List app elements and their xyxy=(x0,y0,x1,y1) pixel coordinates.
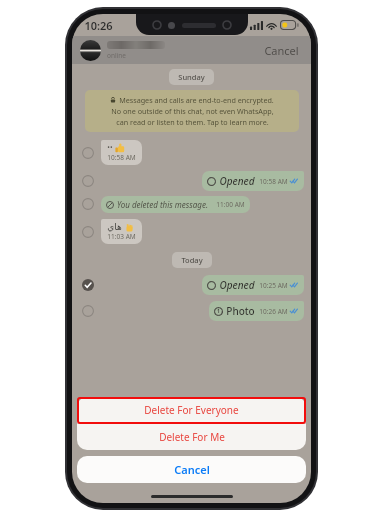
staticText: Cancel xyxy=(174,462,210,477)
button[interactable]: Today xyxy=(172,252,212,268)
staticText: هاي xyxy=(107,222,122,232)
staticText: Cancel xyxy=(264,43,299,58)
button[interactable]: هاي xyxy=(101,219,142,244)
staticText: Opened xyxy=(219,174,255,188)
button[interactable]: Messages and calls are end-to-end encryp… xyxy=(85,90,299,132)
staticText: Today xyxy=(181,255,203,265)
button[interactable]: Select message xyxy=(79,144,97,162)
staticText: •• xyxy=(107,143,113,153)
staticText: No one outside of this chat, not even Wh… xyxy=(111,106,274,116)
staticText: Delete For Everyone xyxy=(144,403,239,417)
staticText: 10:26 AM xyxy=(259,307,288,316)
staticText: 10:26 xyxy=(84,18,113,33)
button[interactable]: Contact photo xyxy=(80,40,101,61)
staticText: online xyxy=(107,51,126,60)
button[interactable]: You deleted this message. xyxy=(101,196,250,213)
button[interactable]: Cancel xyxy=(77,456,306,483)
staticText: 10:58 AM xyxy=(259,177,288,186)
staticText: 11:00 AM xyxy=(216,200,245,209)
staticText: 11:03 AM xyxy=(107,232,136,241)
button[interactable]: Sunday xyxy=(169,69,214,85)
staticText: Sunday xyxy=(178,72,205,82)
button[interactable]: Delete For Me xyxy=(77,424,306,450)
staticText: 10:58 AM xyxy=(107,153,136,162)
staticText: Delete For Me xyxy=(159,430,225,444)
staticText: 10:25 AM xyxy=(259,281,288,290)
button[interactable]: Select message xyxy=(79,195,97,213)
staticText: Messages and calls are end-to-end encryp… xyxy=(119,95,274,105)
staticText: can read or listen to them. Tap to learn… xyxy=(116,117,269,127)
button[interactable]: 1 xyxy=(209,301,304,321)
staticText: 1 xyxy=(217,308,220,315)
staticText: Opened xyxy=(219,278,255,292)
staticText: You deleted this message. xyxy=(117,199,208,210)
button[interactable]: Opened xyxy=(202,171,304,191)
button[interactable]: Select message xyxy=(79,223,97,241)
button[interactable]: Opened xyxy=(202,275,304,295)
button[interactable]: Cancel xyxy=(261,39,302,62)
button[interactable]: Select message xyxy=(79,302,97,320)
button[interactable]: Select message xyxy=(79,172,97,190)
button[interactable]: Delete For Everyone xyxy=(77,397,306,423)
staticText: Photo xyxy=(226,304,255,318)
button[interactable]: Message selected xyxy=(79,276,97,294)
button[interactable]: •• xyxy=(101,140,142,165)
